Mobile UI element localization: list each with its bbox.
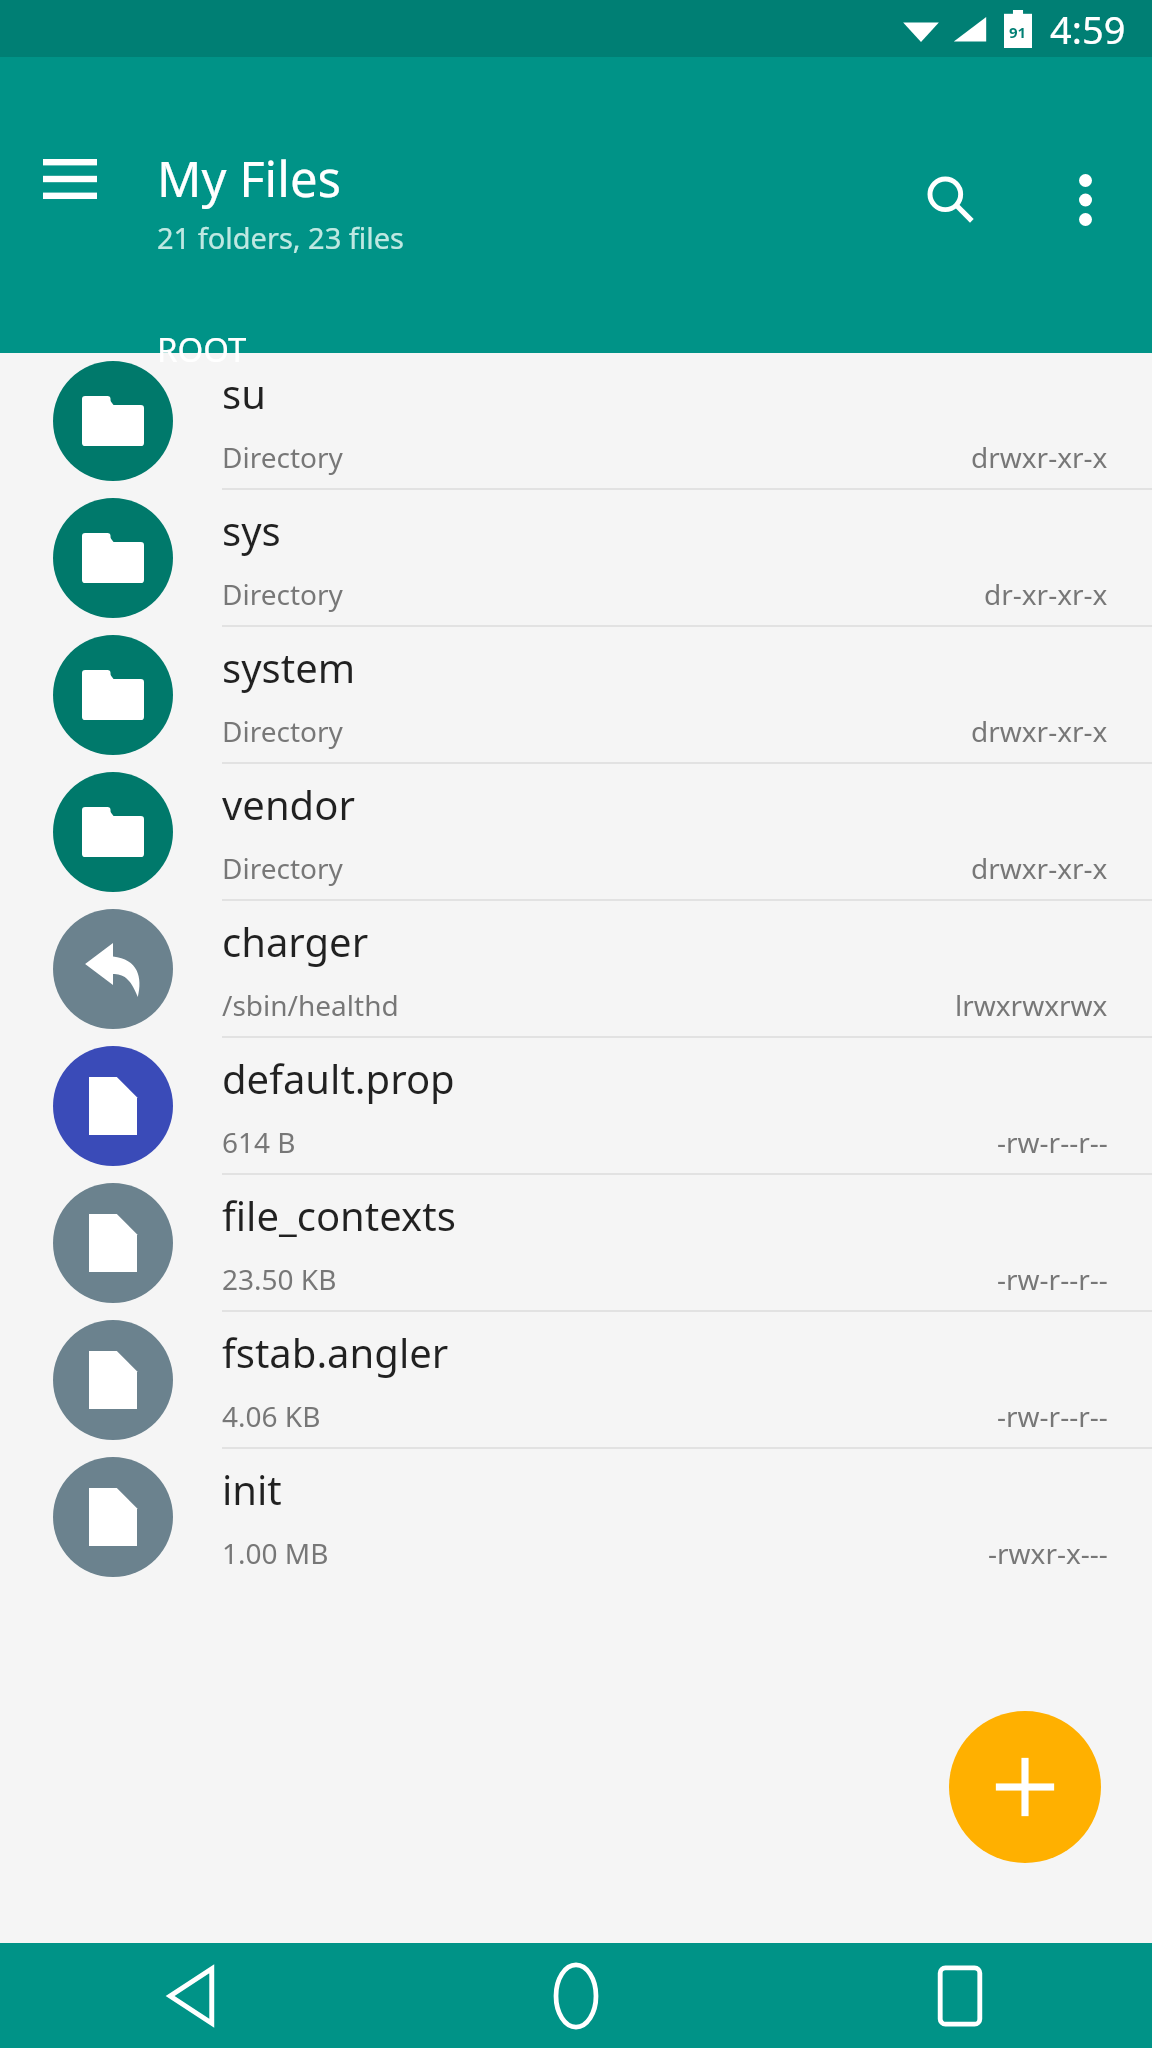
- staticText: 4:59: [1050, 3, 1126, 55]
- staticText: 614 B: [222, 1123, 296, 1161]
- button[interactable]: More options: [1037, 152, 1133, 248]
- staticText: file_contexts: [222, 1188, 456, 1242]
- button[interactable]: Open navigation drawer: [22, 131, 118, 227]
- staticText: system: [222, 640, 356, 694]
- staticText: -rw-r--r--: [997, 1260, 1108, 1298]
- staticText: drwxr-xr-x: [971, 712, 1108, 750]
- staticText: vendor: [222, 777, 355, 831]
- staticText: 1.00 MB: [222, 1534, 329, 1572]
- button[interactable]: vendor: [0, 764, 1152, 899]
- button[interactable]: fstab.angler: [0, 1312, 1152, 1447]
- staticText: lrwxrwxrwx: [955, 986, 1108, 1024]
- staticText: Directory: [222, 575, 343, 613]
- button[interactable]: Back: [0, 1943, 384, 2048]
- staticText: default.prop: [222, 1051, 455, 1105]
- button[interactable]: default.prop: [0, 1038, 1152, 1173]
- button[interactable]: su: [0, 353, 1152, 488]
- staticText: su: [222, 366, 266, 420]
- button[interactable]: charger: [0, 901, 1152, 1036]
- staticText: 4.06 KB: [222, 1397, 321, 1435]
- button[interactable]: Add: [949, 1711, 1101, 1863]
- button[interactable]: sys: [0, 490, 1152, 625]
- staticText: Directory: [222, 712, 343, 750]
- button[interactable]: Search: [902, 152, 998, 248]
- button[interactable]: file_contexts: [0, 1175, 1152, 1310]
- button[interactable]: Home: [384, 1943, 768, 2048]
- staticText: Directory: [222, 849, 343, 887]
- staticText: 23.50 KB: [222, 1260, 337, 1298]
- staticText: My Files: [157, 145, 341, 212]
- staticText: -rw-r--r--: [997, 1123, 1108, 1161]
- staticText: sys: [222, 503, 281, 557]
- staticText: 21 folders, 23 files: [157, 218, 404, 257]
- staticText: Directory: [222, 438, 343, 476]
- staticText: dr-xr-xr-x: [984, 575, 1108, 613]
- button[interactable]: Recent apps: [768, 1943, 1152, 2048]
- staticText: charger: [222, 914, 369, 968]
- staticText: fstab.angler: [222, 1325, 449, 1379]
- button[interactable]: system: [0, 627, 1152, 762]
- staticText: -rwxr-x---: [988, 1534, 1108, 1572]
- staticText: init: [222, 1462, 282, 1516]
- button[interactable]: init: [0, 1449, 1152, 1584]
- staticText: drwxr-xr-x: [971, 438, 1108, 476]
- staticText: drwxr-xr-x: [971, 849, 1108, 887]
- staticText: 91: [1009, 22, 1027, 42]
- staticText: /sbin/healthd: [222, 986, 399, 1024]
- staticText: -rw-r--r--: [997, 1397, 1108, 1435]
- staticText: ROOT: [157, 327, 247, 372]
